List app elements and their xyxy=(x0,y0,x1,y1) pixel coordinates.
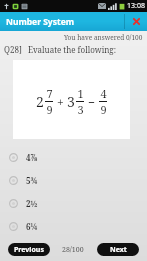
staticText: 3 xyxy=(77,102,84,117)
staticText: Q28] xyxy=(4,44,22,55)
button[interactable]: 5¾ xyxy=(0,169,147,192)
staticText: 2½ xyxy=(26,198,38,209)
staticText: Next xyxy=(110,245,127,255)
staticText: You have answered 0/100 xyxy=(64,33,143,42)
staticText: 3 xyxy=(67,92,75,111)
staticText: 2 xyxy=(36,92,44,111)
staticText: Number System xyxy=(6,16,75,28)
button[interactable]: 4⅞ xyxy=(0,146,147,169)
staticText: 7 xyxy=(46,86,53,101)
button[interactable]: Previous xyxy=(8,243,50,256)
button[interactable]: Next xyxy=(97,243,139,256)
staticText: 4⅞ xyxy=(26,152,38,163)
staticText: 1 xyxy=(77,86,84,101)
staticText: − xyxy=(88,94,95,110)
staticText: + xyxy=(57,94,64,110)
button[interactable]: 6¼ xyxy=(0,215,147,238)
staticText: 5¾ xyxy=(26,175,38,186)
button[interactable]: Close xyxy=(125,12,147,31)
staticText: 9 xyxy=(46,102,53,117)
staticText: 28/100 xyxy=(62,245,84,255)
staticText: 13:08 xyxy=(127,1,145,11)
button[interactable]: 2½ xyxy=(0,192,147,215)
staticText: Evaluate the following: xyxy=(28,44,116,55)
staticText: 4 xyxy=(100,86,107,101)
staticText: 9 xyxy=(100,102,107,117)
staticText: Previous xyxy=(14,245,44,255)
staticText: 6¼ xyxy=(26,221,38,232)
